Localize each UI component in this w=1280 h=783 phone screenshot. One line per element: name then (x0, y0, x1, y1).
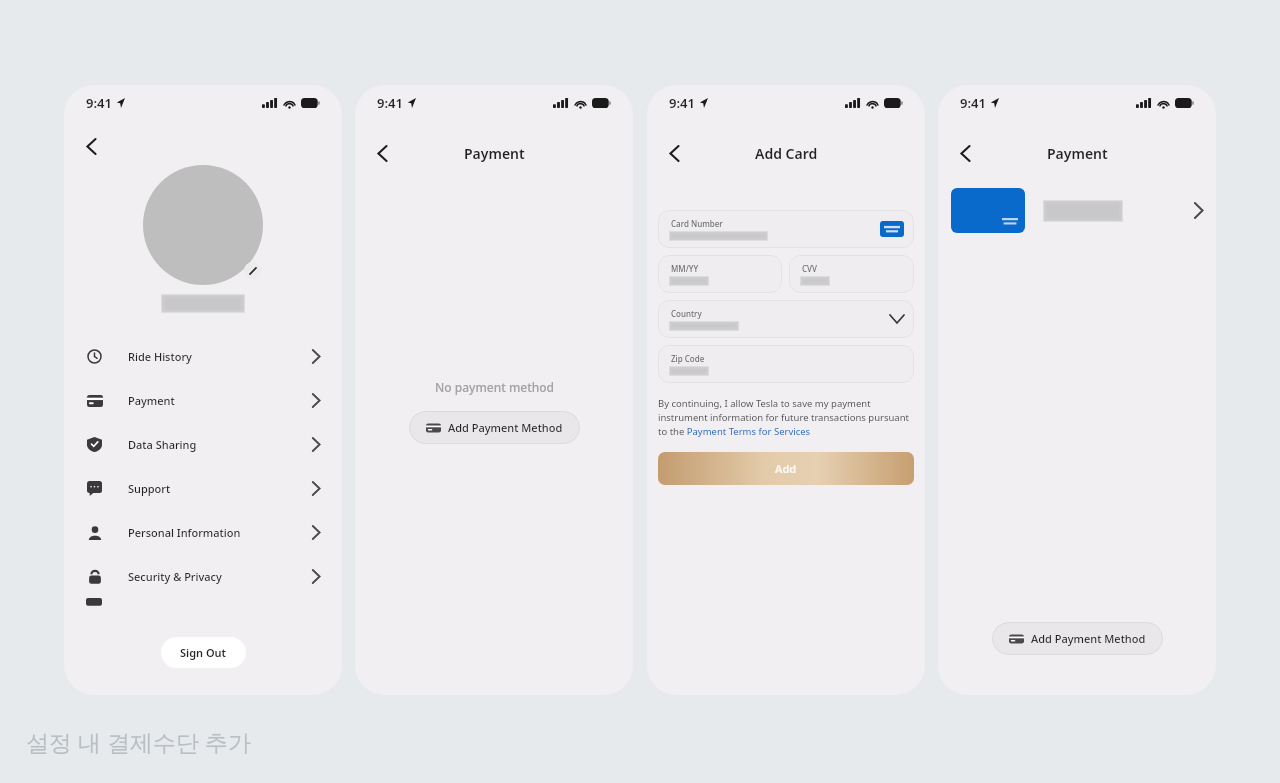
button[interactable]: Card Number (658, 210, 914, 248)
button[interactable]: Edit photo (244, 262, 261, 279)
button[interactable]: Back (367, 138, 397, 168)
staticText: Sign Out (180, 645, 227, 660)
staticText: Personal Information (128, 525, 241, 540)
button[interactable]: Personal Information (64, 510, 342, 554)
staticText: 9:41 (669, 94, 695, 112)
staticText: Add Card (755, 144, 818, 163)
staticText: Support (128, 481, 171, 496)
staticText: No payment method (435, 379, 555, 395)
staticText: 9:41 (86, 94, 112, 112)
button[interactable] (64, 598, 342, 612)
staticText: Payment (1047, 144, 1108, 163)
staticText: Security & Privacy (128, 569, 222, 584)
button[interactable] (938, 188, 1216, 233)
staticText: Ride History (128, 349, 192, 364)
staticText: 설정 내 결제수단 추가 (26, 726, 251, 757)
staticText: CVV (802, 263, 817, 274)
staticText: MM/YY (671, 263, 699, 274)
staticText: By continuing, I allow Tesla to save my … (658, 397, 914, 438)
staticText: Data Sharing (128, 437, 197, 452)
button[interactable]: Payment (64, 378, 342, 422)
staticText: Payment (128, 393, 175, 408)
staticText: Card Number (671, 218, 723, 229)
button[interactable]: CVV (789, 255, 914, 293)
staticText: Add (775, 461, 797, 476)
button[interactable]: Add Payment Method (409, 411, 580, 444)
button[interactable]: Add Payment Method (992, 622, 1163, 655)
button[interactable]: Country (658, 300, 914, 338)
button[interactable]: Add (658, 452, 914, 485)
button[interactable]: Back (950, 138, 980, 168)
staticText: Zip Code (671, 353, 705, 364)
staticText: Add Payment Method (1031, 631, 1146, 646)
button[interactable]: Support (64, 466, 342, 510)
button[interactable]: Zip Code (658, 345, 914, 383)
staticText: Payment (464, 144, 525, 163)
staticText: Add Payment Method (448, 420, 563, 435)
button[interactable]: Back (76, 131, 106, 161)
button[interactable]: Security & Privacy (64, 554, 342, 598)
button[interactable]: Sign Out (161, 637, 246, 668)
staticText: 9:41 (960, 94, 986, 112)
staticText: 9:41 (377, 94, 403, 112)
button[interactable]: Back (659, 138, 689, 168)
button[interactable]: Data Sharing (64, 422, 342, 466)
staticText: Country (671, 308, 702, 319)
button[interactable]: MM/YY (658, 255, 782, 293)
button[interactable]: Ride History (64, 334, 342, 378)
